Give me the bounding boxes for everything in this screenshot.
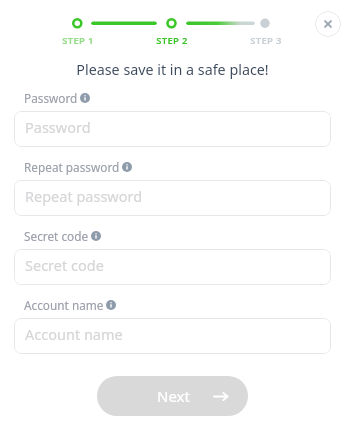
staticText: Account name xyxy=(25,324,123,344)
button[interactable]: Secret code xyxy=(14,249,331,285)
button[interactable]: Account name xyxy=(14,318,331,354)
staticText: Next xyxy=(157,386,190,406)
button[interactable]: Repeat password xyxy=(14,180,331,216)
staticText: STEP 2 xyxy=(150,34,194,47)
staticText: Please save it in a safe place! xyxy=(0,60,345,79)
staticText: STEP 3 xyxy=(244,34,288,47)
button[interactable]: Close xyxy=(315,11,341,37)
staticText: Password xyxy=(25,117,91,137)
staticText: Repeat password xyxy=(24,159,120,175)
staticText: Repeat password xyxy=(25,186,143,206)
staticText: Secret code xyxy=(25,255,104,275)
button[interactable]: Password xyxy=(14,111,331,147)
staticText: Account name xyxy=(24,297,104,313)
button[interactable]: Next xyxy=(97,376,248,416)
staticText: STEP 1 xyxy=(56,34,100,47)
staticText: Secret code xyxy=(24,228,89,244)
staticText: Password xyxy=(24,90,78,106)
